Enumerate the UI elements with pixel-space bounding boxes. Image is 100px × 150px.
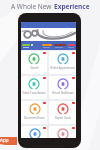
button[interactable]: Category 5: [68, 44, 75, 46]
button[interactable]: Document Room: [21, 101, 47, 124]
button[interactable]: Video Consultation: [21, 76, 47, 99]
button[interactable]: Search: [21, 51, 47, 74]
button[interactable]: Category 1: [22, 44, 30, 46]
button[interactable]: App Store: [0, 137, 17, 145]
button[interactable]: My Doctor: [21, 126, 47, 138]
staticText: Online Appointment: [50, 66, 75, 70]
staticText: Search: [30, 66, 39, 70]
staticText: Experience: [54, 2, 90, 11]
staticText: A Whole New: [11, 2, 54, 11]
staticText: Report Cards: [55, 116, 71, 120]
button[interactable]: Category 4: [54, 44, 66, 46]
button[interactable]: Report Cards: [49, 101, 76, 124]
staticText: Virtual Healthcare: [52, 91, 74, 95]
button[interactable]: Prescription: [49, 126, 76, 138]
staticText: Video Consultation: [22, 91, 46, 95]
staticText: App Store: [0, 137, 17, 145]
button[interactable]: Category 3: [42, 44, 52, 46]
staticText: Document Room: [24, 116, 45, 120]
button[interactable]: Virtual Healthcare: [49, 76, 76, 99]
button[interactable]: Online Appointment: [49, 51, 76, 74]
